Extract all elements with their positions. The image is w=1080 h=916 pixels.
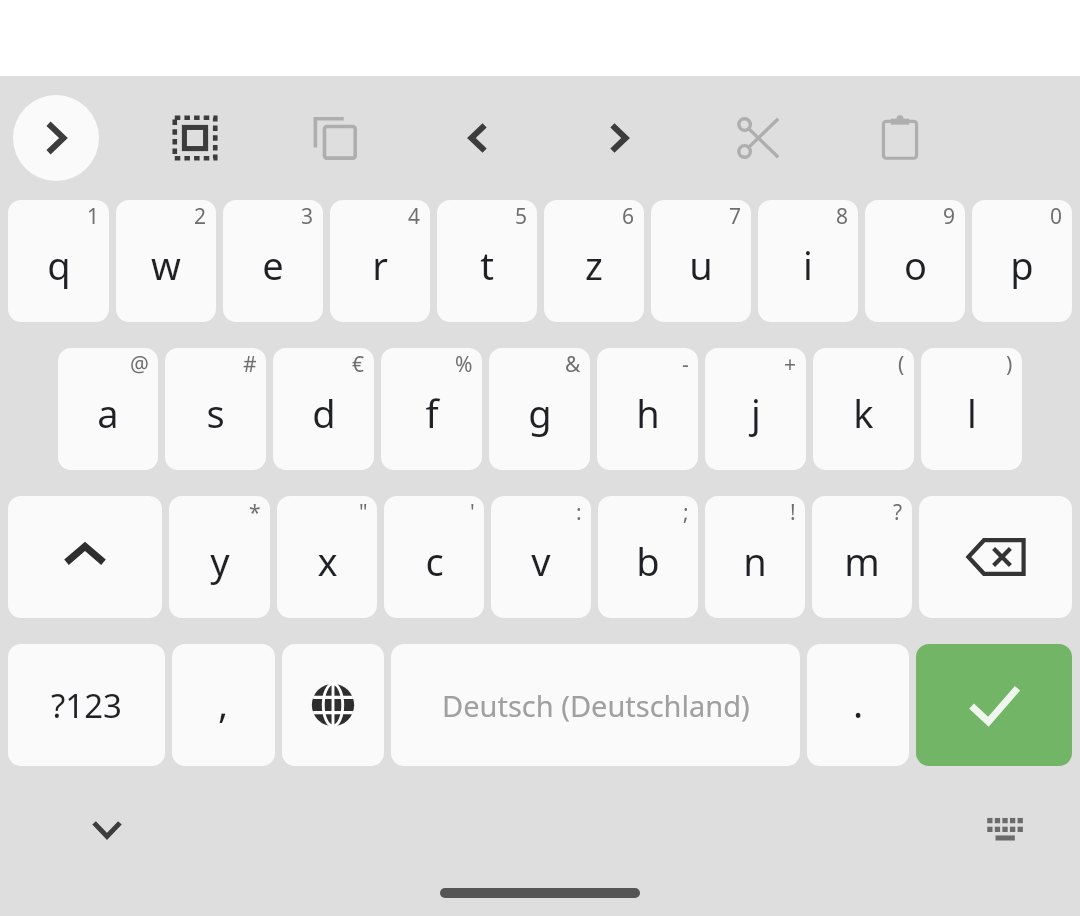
button[interactable]: l bbox=[921, 348, 1022, 470]
staticText: w bbox=[151, 239, 181, 291]
staticText: 1 bbox=[87, 202, 100, 231]
button[interactable]: j bbox=[705, 348, 806, 470]
staticText: t bbox=[480, 239, 494, 291]
staticText: ; bbox=[683, 498, 689, 527]
button[interactable]: w bbox=[116, 200, 216, 322]
staticText: f bbox=[425, 387, 439, 439]
button[interactable]: . bbox=[807, 644, 909, 766]
staticText: 2 bbox=[194, 202, 207, 231]
staticText: z bbox=[585, 239, 603, 291]
staticText: ( bbox=[898, 350, 905, 379]
staticText: : bbox=[576, 498, 582, 527]
button[interactable]: Shift bbox=[8, 496, 162, 618]
button[interactable]: u bbox=[651, 200, 751, 322]
staticText: 0 bbox=[1050, 202, 1063, 231]
button[interactable]: y bbox=[169, 496, 270, 618]
staticText: i bbox=[803, 239, 813, 291]
staticText: h bbox=[636, 387, 660, 439]
button[interactable]: Switch keyboard bbox=[962, 784, 1052, 874]
button[interactable]: m bbox=[812, 496, 912, 618]
staticText: 7 bbox=[729, 202, 742, 231]
button[interactable]: Change language bbox=[282, 644, 384, 766]
staticText: ! bbox=[790, 498, 796, 527]
staticText: 8 bbox=[836, 202, 849, 231]
staticText: + bbox=[784, 350, 797, 379]
staticText: d bbox=[312, 387, 336, 439]
staticText: r bbox=[372, 239, 388, 291]
button[interactable]: ?123 bbox=[8, 644, 165, 766]
staticText: , bbox=[218, 677, 229, 729]
button[interactable]: , bbox=[172, 644, 275, 766]
button[interactable]: p bbox=[972, 200, 1072, 322]
staticText: " bbox=[359, 498, 368, 527]
button[interactable]: r bbox=[330, 200, 430, 322]
button[interactable]: Hide keyboard bbox=[62, 784, 152, 874]
button[interactable]: n bbox=[705, 496, 805, 618]
button[interactable]: Next bbox=[576, 95, 662, 181]
button[interactable]: b bbox=[598, 496, 698, 618]
button[interactable]: k bbox=[813, 348, 914, 470]
button[interactable]: f bbox=[381, 348, 482, 470]
staticText: ? bbox=[893, 498, 903, 527]
staticText: @ bbox=[130, 350, 149, 379]
staticText: u bbox=[689, 239, 713, 291]
button[interactable]: Backspace bbox=[919, 496, 1072, 618]
button[interactable]: Select all bbox=[152, 95, 238, 181]
staticText: b bbox=[636, 535, 660, 587]
button[interactable]: q bbox=[8, 200, 109, 322]
button[interactable]: z bbox=[544, 200, 644, 322]
button[interactable]: Deutsch (Deutschland) bbox=[391, 644, 800, 766]
button[interactable]: h bbox=[597, 348, 698, 470]
staticText: 9 bbox=[943, 202, 956, 231]
staticText: % bbox=[455, 350, 473, 379]
button[interactable]: i bbox=[758, 200, 858, 322]
staticText: n bbox=[743, 535, 767, 587]
staticText: # bbox=[243, 350, 257, 379]
staticText: . bbox=[853, 677, 864, 729]
button[interactable]: v bbox=[491, 496, 591, 618]
staticText: c bbox=[425, 535, 444, 587]
staticText: m bbox=[844, 535, 880, 587]
staticText: e bbox=[262, 239, 284, 291]
staticText: x bbox=[317, 535, 338, 587]
staticText: q bbox=[47, 239, 71, 291]
staticText: 6 bbox=[622, 202, 635, 231]
button[interactable]: Copy bbox=[293, 95, 379, 181]
staticText: ) bbox=[1006, 350, 1013, 379]
button[interactable]: s bbox=[165, 348, 266, 470]
button[interactable]: Enter bbox=[916, 644, 1072, 766]
staticText: s bbox=[206, 387, 225, 439]
staticText: 3 bbox=[301, 202, 314, 231]
staticText: l bbox=[967, 387, 977, 439]
staticText: j bbox=[751, 387, 761, 439]
button[interactable]: e bbox=[223, 200, 323, 322]
button[interactable]: x bbox=[277, 496, 377, 618]
button[interactable]: a bbox=[58, 348, 158, 470]
staticText: € bbox=[352, 350, 365, 379]
staticText: ?123 bbox=[51, 683, 122, 728]
staticText: & bbox=[565, 350, 581, 379]
button[interactable]: t bbox=[437, 200, 537, 322]
staticText: p bbox=[1010, 239, 1034, 291]
staticText: g bbox=[528, 387, 552, 439]
button[interactable]: Previous bbox=[435, 95, 521, 181]
staticText: ' bbox=[470, 498, 475, 527]
staticText: - bbox=[682, 350, 689, 379]
staticText: * bbox=[249, 498, 261, 527]
button[interactable]: Paste bbox=[857, 95, 943, 181]
staticText: o bbox=[904, 239, 927, 291]
button[interactable]: d bbox=[273, 348, 374, 470]
staticText: 4 bbox=[408, 202, 421, 231]
button[interactable]: Cut bbox=[716, 95, 802, 181]
button[interactable]: g bbox=[489, 348, 590, 470]
button[interactable]: Expand toolbar bbox=[13, 95, 99, 181]
staticText: k bbox=[853, 387, 874, 439]
staticText: v bbox=[531, 535, 551, 587]
staticText: 5 bbox=[515, 202, 528, 231]
button[interactable]: c bbox=[384, 496, 484, 618]
staticText: Deutsch (Deutschland) bbox=[442, 686, 750, 725]
staticText: y bbox=[210, 535, 230, 587]
button[interactable]: o bbox=[865, 200, 965, 322]
staticText: a bbox=[97, 387, 119, 439]
